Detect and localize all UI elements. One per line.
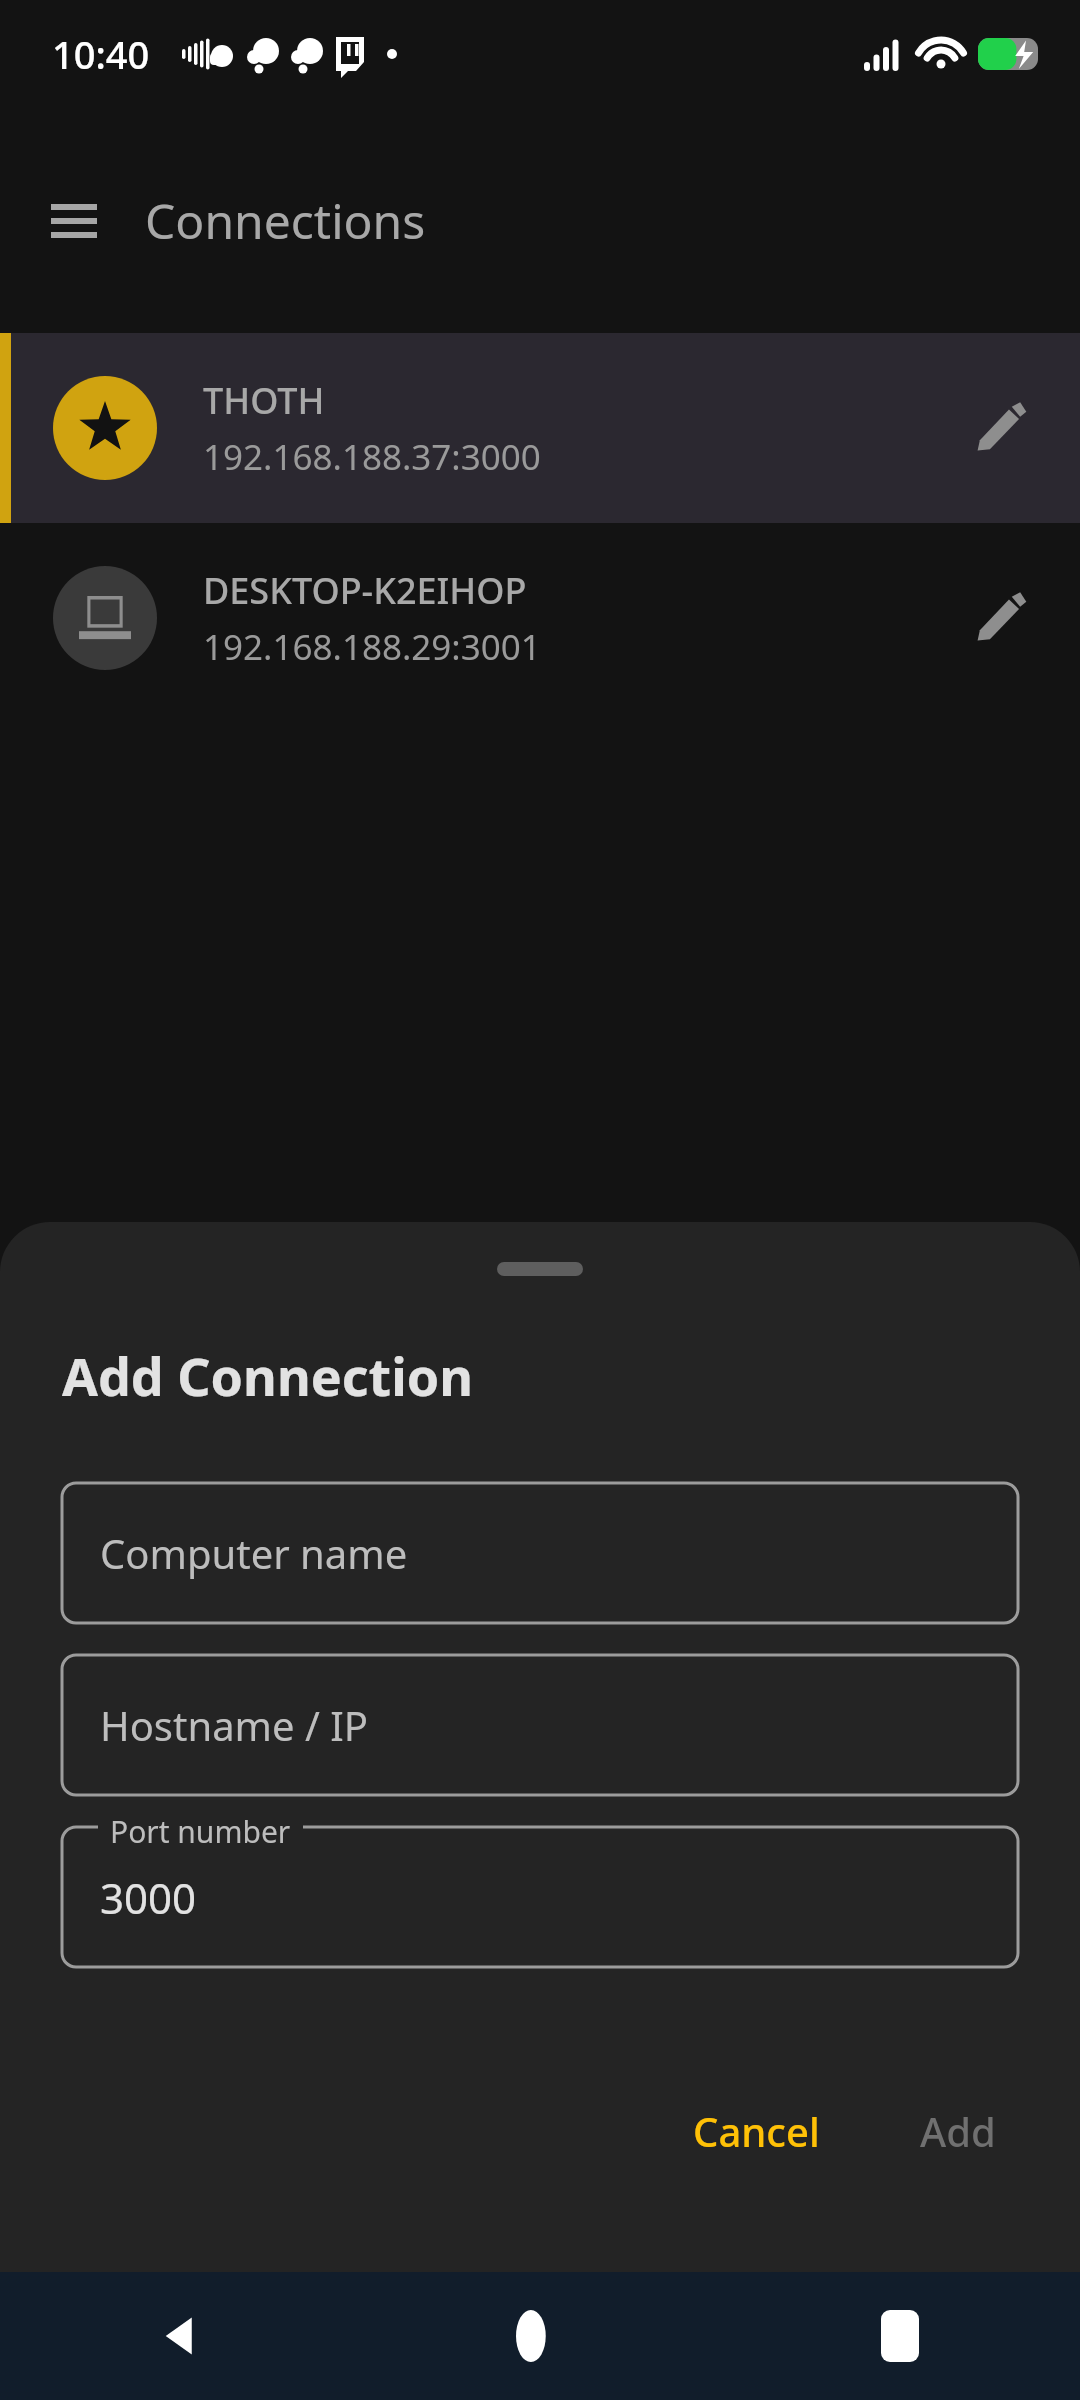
staticText: Cancel — [693, 2104, 820, 2158]
staticText: Add — [920, 2104, 996, 2158]
button[interactable]: Hostname / IP — [62, 1655, 1018, 1795]
button[interactable]: Edit connection — [940, 558, 1060, 678]
staticText: 192.168.188.29:3001 — [203, 623, 541, 671]
button[interactable]: Cancel — [667, 2082, 846, 2180]
button[interactable]: Port number — [62, 1827, 1018, 1967]
button[interactable]: Recent apps — [720, 2272, 1080, 2400]
staticText: 192.168.188.37:3000 — [203, 433, 541, 481]
staticText: Port number — [110, 1811, 291, 1852]
staticText: DESKTOP-K2EIHOP — [203, 566, 527, 615]
button[interactable]: Open navigation menu — [20, 167, 128, 275]
button[interactable]: DESKTOP-K2EIHOP — [0, 523, 1080, 713]
button[interactable]: Back — [0, 2272, 360, 2400]
button[interactable]: Add — [894, 2082, 1022, 2180]
staticText: 10:40 — [52, 28, 150, 80]
staticText: Computer name — [100, 1526, 408, 1580]
button[interactable]: Edit connection — [940, 368, 1060, 488]
staticText: THOTH — [203, 376, 325, 425]
staticText: 3000 — [100, 1869, 197, 1926]
button[interactable]: THOTH — [0, 333, 1080, 523]
button[interactable]: Computer name — [62, 1483, 1018, 1623]
staticText: Connections — [145, 188, 426, 253]
staticText: Add Connection — [62, 1340, 474, 1411]
staticText: Hostname / IP — [100, 1698, 368, 1752]
button[interactable]: Home — [360, 2272, 720, 2400]
